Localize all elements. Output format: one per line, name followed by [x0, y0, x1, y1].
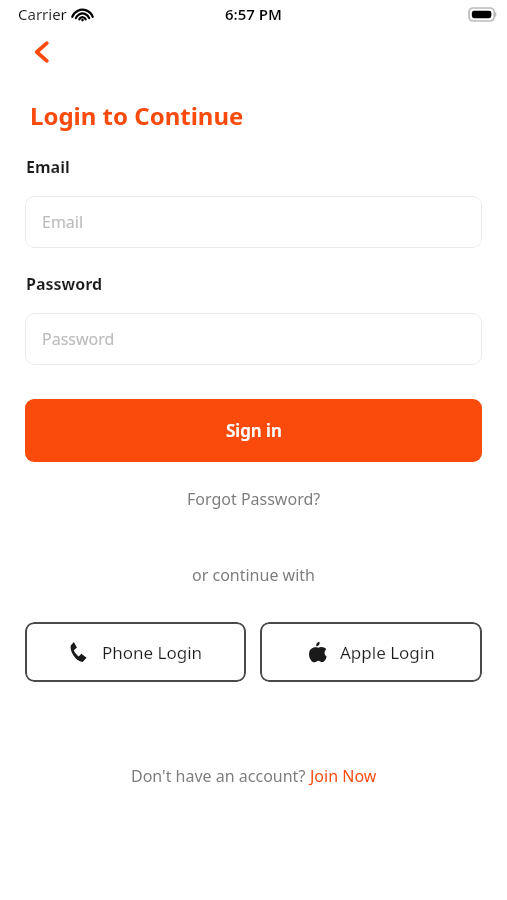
- button[interactable]: Don't have an account?: [0, 765, 507, 787]
- staticText: Email: [42, 211, 84, 233]
- button[interactable]: Back: [22, 32, 62, 72]
- button[interactable]: Sign in: [25, 399, 482, 462]
- staticText: Email: [26, 156, 70, 178]
- staticText: Apple Login: [340, 641, 435, 664]
- staticText: Join Now: [310, 765, 377, 787]
- button[interactable]: Forgot Password?: [0, 482, 507, 516]
- button[interactable]: Phone Login: [25, 622, 246, 682]
- staticText: 6:57 PM: [225, 4, 282, 24]
- staticText: Forgot Password?: [187, 488, 321, 510]
- button[interactable]: Email: [25, 196, 482, 248]
- staticText: Phone Login: [102, 641, 203, 664]
- staticText: Don't have an account?: [131, 765, 310, 787]
- staticText: Carrier: [18, 4, 67, 24]
- button[interactable]: Password: [25, 313, 482, 365]
- staticText: Login to Continue: [30, 99, 244, 132]
- staticText: Password: [42, 328, 115, 350]
- button[interactable]: Apple Login: [260, 622, 482, 682]
- staticText: Sign in: [226, 419, 282, 442]
- staticText: or continue with: [192, 564, 315, 586]
- staticText: Password: [26, 273, 103, 295]
